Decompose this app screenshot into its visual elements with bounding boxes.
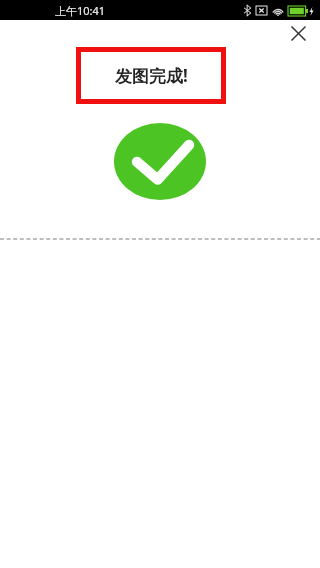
staticText: 发图完成! — [115, 64, 188, 87]
staticText: 上午10:41 — [55, 3, 106, 18]
button[interactable]: Close — [282, 20, 314, 47]
button[interactable]: Success — [114, 123, 206, 200]
button[interactable]: 发图完成! — [81, 52, 221, 99]
